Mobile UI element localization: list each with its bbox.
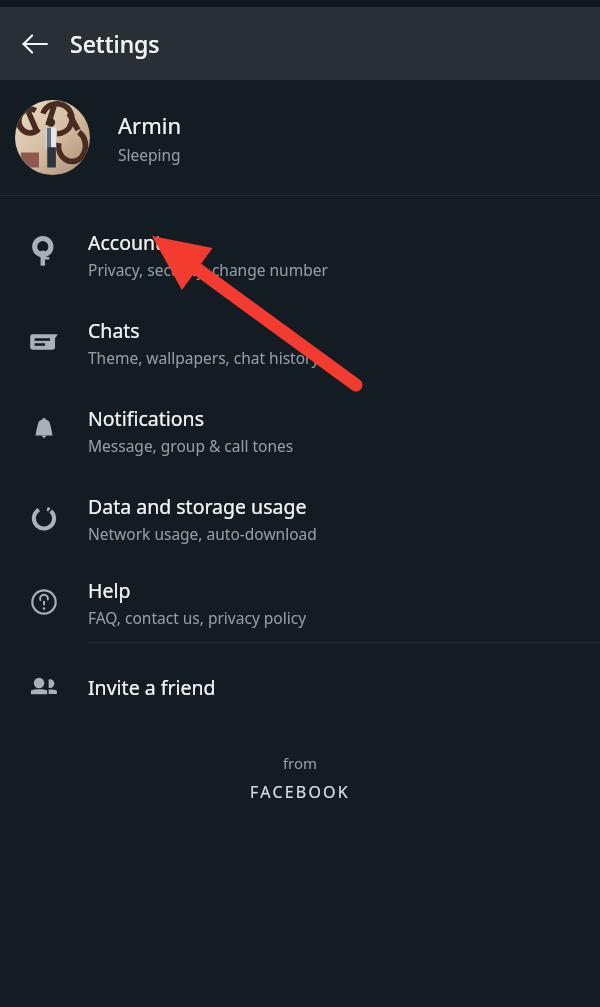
button[interactable]: Invite a friend [0,643,600,731]
staticText: FAQ, contact us, privacy policy [88,607,307,628]
staticText: FACEBOOK [0,781,600,803]
staticText: Chats [88,317,140,344]
staticText: Invite a friend [88,674,216,701]
staticText: Settings [70,28,160,59]
staticText: Data and storage usage [88,493,307,520]
button[interactable]: Notifications [0,386,600,474]
staticText: Notifications [88,405,204,432]
button[interactable]: Account [0,210,600,298]
staticText: Sleeping [118,144,181,165]
staticText: Theme, wallpapers, chat history [88,347,320,368]
staticText: Help [88,577,131,604]
staticText: Privacy, security, change number [88,259,328,280]
staticText: Message, group & call tones [88,435,294,456]
staticText: Account [88,229,163,256]
button[interactable]: Data and storage usage [0,474,600,562]
button[interactable]: Chats [0,298,600,386]
button[interactable]: Back [0,7,70,80]
staticText: Armin [118,110,181,140]
staticText: from [0,753,600,773]
button[interactable]: Help [0,562,600,642]
staticText: Network usage, auto-download [88,523,317,544]
button[interactable]: Armin [0,80,600,195]
